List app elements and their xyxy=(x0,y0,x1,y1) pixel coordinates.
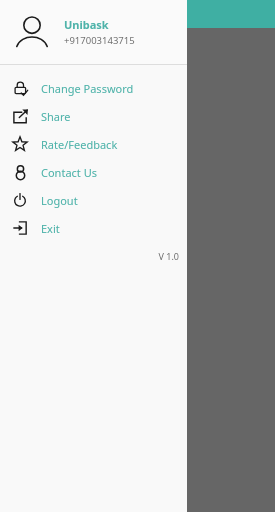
button[interactable]: Logout xyxy=(0,186,187,214)
staticText: Change Password xyxy=(41,81,134,96)
button[interactable]: Share xyxy=(0,102,187,130)
staticText: V 1.0 xyxy=(0,250,179,262)
button[interactable]: Change Password xyxy=(0,74,187,102)
button[interactable]: Back xyxy=(8,0,36,28)
button[interactable]: Comments xyxy=(8,158,267,271)
staticText: Exit xyxy=(41,221,60,236)
button[interactable]: Contact Us xyxy=(0,158,187,186)
button[interactable]: Exit xyxy=(0,214,187,242)
button[interactable]: Unibask xyxy=(0,0,187,64)
staticText: Contact Us xyxy=(41,165,97,180)
staticText: +917003143715 xyxy=(64,34,135,47)
staticText: Analytics xyxy=(18,131,58,144)
staticText: Unibask xyxy=(64,17,109,32)
staticText: Share xyxy=(41,109,71,124)
staticText: Neet Near Me xyxy=(51,5,142,23)
button[interactable]: Analytics xyxy=(8,37,267,150)
button[interactable]: Rate/Feedback xyxy=(0,130,187,158)
staticText: Rate/Feedback xyxy=(41,137,118,152)
staticText: Logout xyxy=(41,193,78,208)
